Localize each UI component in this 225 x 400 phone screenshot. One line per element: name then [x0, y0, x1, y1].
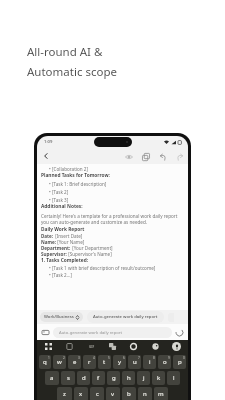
staticText: [Collaboration 2]: [52, 166, 88, 172]
button[interactable]: l: [167, 371, 180, 385]
staticText: h: [127, 374, 131, 382]
staticText: Automatic scope: [27, 64, 117, 80]
staticText: k: [157, 374, 161, 382]
button[interactable]: m: [154, 387, 168, 400]
staticText: 7: [138, 356, 140, 360]
staticText: j: [143, 374, 145, 382]
staticText: GIF: [89, 345, 95, 349]
button[interactable]: t: [98, 355, 111, 369]
button[interactable]: Redo: [174, 151, 185, 162]
staticText: •: [49, 166, 52, 172]
button[interactable]: x: [74, 387, 88, 400]
staticText: Certainly! Here's a template for a profe…: [41, 213, 184, 225]
staticText: z: [63, 390, 66, 398]
button[interactable]: Voice input: [168, 340, 185, 353]
button[interactable]: a: [45, 371, 59, 385]
staticText: 1. Tasks Completed:: [41, 257, 89, 264]
staticText: u: [133, 358, 137, 366]
button[interactable]: Settings: [125, 340, 142, 353]
staticText: 6: [123, 356, 125, 360]
button[interactable]: Send: [175, 328, 184, 337]
staticText: [Task 3]: [52, 197, 69, 203]
button[interactable]: Apps: [40, 340, 57, 353]
staticText: Date:: [41, 233, 54, 239]
staticText: m: [158, 390, 164, 398]
staticText: e: [73, 358, 77, 366]
staticText: Name:: [41, 239, 56, 245]
button[interactable]: g: [107, 371, 120, 385]
button[interactable]: s: [61, 371, 75, 385]
button[interactable]: Undo: [157, 151, 168, 162]
staticText: [Your Department]: [71, 245, 113, 251]
button[interactable]: Back: [40, 150, 52, 162]
button[interactable]: u: [128, 355, 141, 369]
staticText: 1: [48, 356, 50, 360]
button[interactable]: Keyboard: [41, 328, 50, 337]
staticText: x: [79, 390, 83, 398]
button[interactable]: h: [122, 371, 135, 385]
staticText: Auto-generate work daily report: [93, 314, 158, 320]
button[interactable]: b: [122, 387, 136, 400]
staticText: [Task 2...]: [52, 272, 72, 278]
staticText: 4: [93, 356, 95, 360]
button[interactable]: j: [137, 371, 150, 385]
staticText: s: [67, 374, 70, 382]
staticText: b: [127, 390, 131, 398]
staticText: Additional Notes:: [41, 203, 83, 210]
button[interactable]: GIF: [83, 340, 100, 353]
staticText: [Task 1: Brief description]: [52, 181, 107, 187]
staticText: Auto-generate work daily report: [59, 330, 123, 336]
staticText: Department:: [41, 245, 71, 251]
staticText: •: [49, 189, 52, 195]
staticText: w: [57, 358, 62, 366]
button[interactable]: Copy: [140, 151, 151, 162]
staticText: t: [103, 358, 106, 366]
button[interactable]: f: [92, 371, 105, 385]
button[interactable]: c: [90, 387, 104, 400]
button[interactable]: Work/Business: [40, 312, 83, 322]
staticText: 9: [168, 356, 170, 360]
button[interactable]: v: [106, 387, 120, 400]
button[interactable]: z: [57, 387, 72, 400]
staticText: Work/Business: [44, 314, 74, 320]
staticText: All-round AI &: [27, 44, 103, 60]
button[interactable]: i: [143, 355, 156, 369]
staticText: Planned Tasks for Tomorrow:: [41, 172, 110, 179]
staticText: •: [49, 272, 52, 278]
staticText: f: [97, 374, 100, 382]
staticText: [Insert Date]: [54, 233, 83, 239]
staticText: 3: [78, 356, 80, 360]
button[interactable]: n: [138, 387, 152, 400]
button[interactable]: Auto-generate work daily report: [87, 311, 164, 323]
staticText: •: [49, 181, 52, 187]
button[interactable]: k: [152, 371, 165, 385]
button[interactable]: p: [173, 355, 186, 369]
staticText: v: [111, 390, 115, 398]
button[interactable]: Clipboard: [61, 340, 78, 353]
button[interactable]: Theme: [147, 340, 164, 353]
staticText: n: [143, 390, 147, 398]
button[interactable]: o: [158, 355, 171, 369]
staticText: r: [88, 358, 91, 366]
button[interactable]: Auto-generate work daily report: [53, 327, 172, 338]
staticText: •: [49, 197, 52, 203]
button[interactable]: Preview: [123, 151, 134, 162]
button[interactable]: w: [53, 355, 66, 369]
button[interactable]: d: [77, 371, 90, 385]
staticText: l: [173, 374, 175, 382]
button[interactable]: Translate: [104, 340, 121, 353]
button[interactable]: e: [68, 355, 81, 369]
staticText: c: [96, 390, 99, 398]
staticText: 5: [108, 356, 110, 360]
staticText: g: [112, 374, 116, 382]
button[interactable]: r: [83, 355, 96, 369]
button[interactable]: q: [39, 355, 51, 369]
staticText: •: [49, 265, 52, 271]
button[interactable]: y: [113, 355, 126, 369]
staticText: 0: [183, 356, 185, 360]
staticText: 8: [153, 356, 155, 360]
staticText: p: [178, 358, 182, 366]
staticText: d: [82, 374, 86, 382]
staticText: Daily Work Report: [41, 226, 85, 233]
staticText: 1:09: [44, 139, 53, 145]
